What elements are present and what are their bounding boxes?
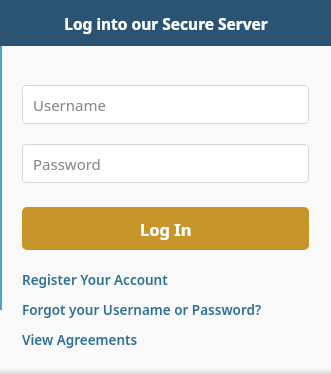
- button[interactable]: Username: [22, 85, 309, 124]
- button[interactable]: Log In: [22, 207, 309, 250]
- button[interactable]: Forgot your Username or Password?: [22, 295, 309, 325]
- button[interactable]: Password: [22, 144, 309, 183]
- staticText: Register Your Account: [22, 271, 168, 289]
- staticText: Forgot your Username or Password?: [22, 301, 262, 319]
- staticText: Log into our Secure Server: [64, 13, 268, 34]
- button[interactable]: Register Your Account: [22, 265, 309, 295]
- staticText: Log In: [140, 218, 192, 240]
- staticText: Username: [33, 95, 106, 115]
- staticText: Password: [33, 154, 101, 174]
- button[interactable]: View Agreements: [22, 325, 309, 355]
- staticText: View Agreements: [22, 331, 138, 349]
